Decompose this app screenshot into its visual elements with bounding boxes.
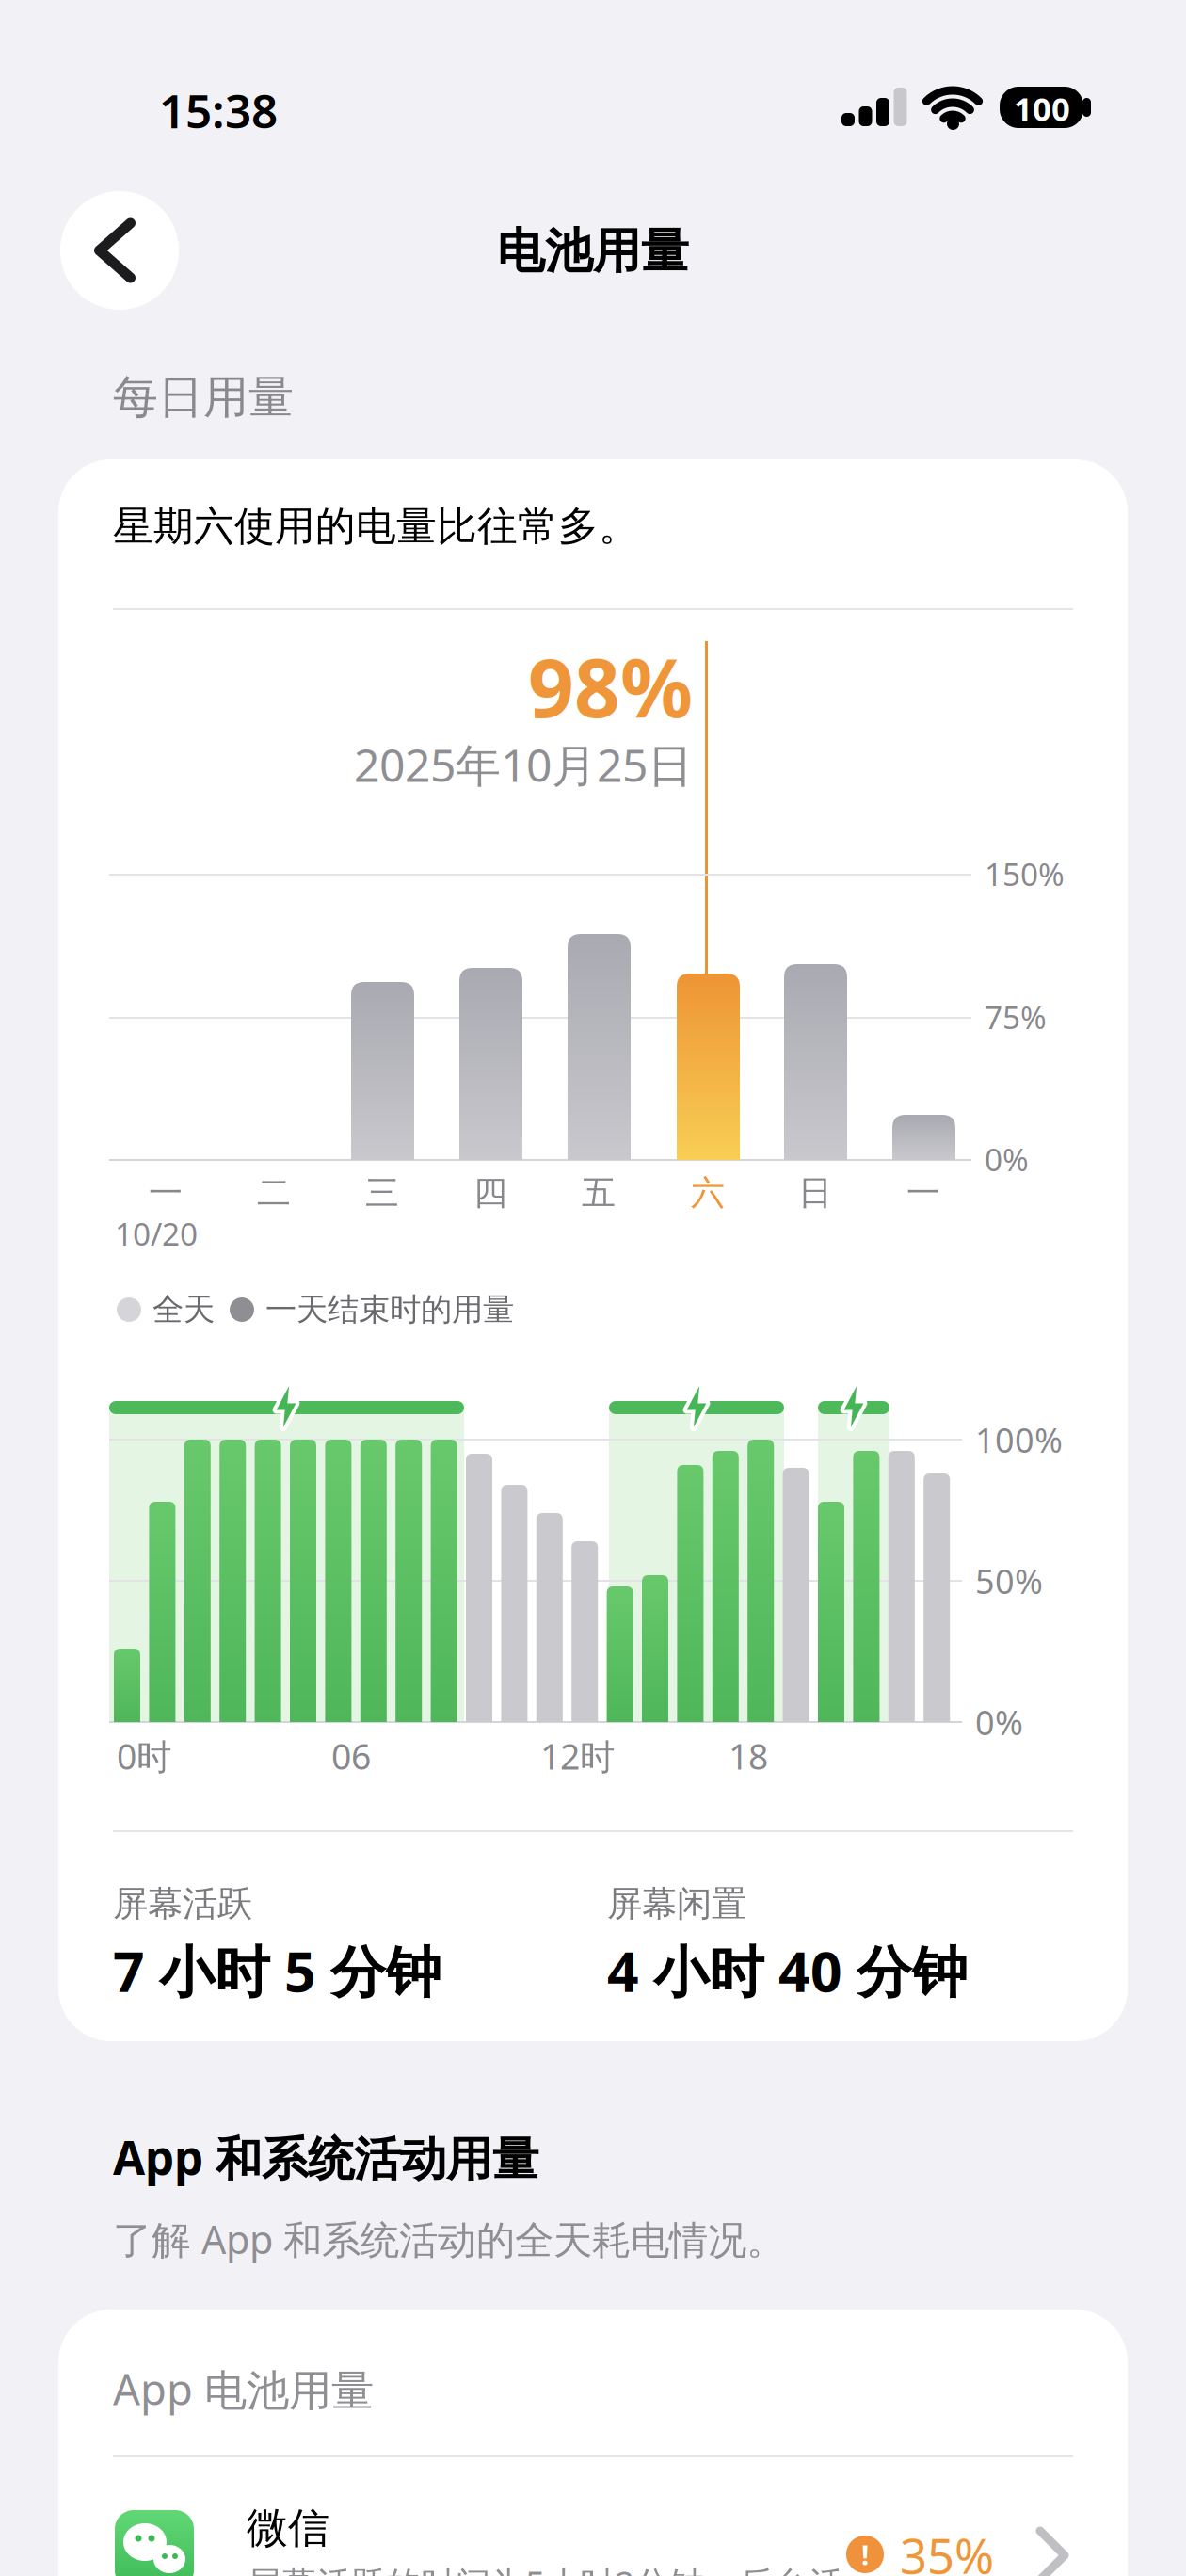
staticText: 35% bbox=[900, 2524, 994, 2576]
staticText: 屏幕活跃 bbox=[113, 1882, 252, 1925]
staticText: 六 bbox=[691, 1172, 725, 1214]
staticText: 屏幕活跃的时间为5小时2分钟，后台活 bbox=[247, 2560, 843, 2576]
staticText: 7 小时 5 分钟 bbox=[113, 1934, 441, 2007]
staticText: App 和系统活动用量 bbox=[113, 2126, 538, 2188]
staticText: 150% bbox=[985, 853, 1065, 895]
staticText: 一天结束时的用量 bbox=[265, 1290, 514, 1329]
staticText: 100 bbox=[1014, 87, 1070, 130]
staticText: App 电池用量 bbox=[113, 2360, 374, 2417]
staticText: 电池用量 bbox=[497, 222, 689, 281]
staticText: 一 bbox=[906, 1172, 940, 1214]
staticText: 4 小时 40 分钟 bbox=[607, 1934, 968, 2007]
button[interactable] bbox=[60, 191, 179, 310]
staticText: 0% bbox=[975, 1700, 1023, 1745]
staticText: 三 bbox=[365, 1172, 399, 1214]
staticText: 100% bbox=[975, 1417, 1063, 1462]
staticText: 0% bbox=[985, 1138, 1029, 1180]
staticText: 98% bbox=[528, 633, 693, 740]
staticText: 了解 App 和系统活动的全天耗电情况。 bbox=[113, 2213, 785, 2265]
staticText: 二 bbox=[257, 1172, 291, 1214]
staticText: 12时 bbox=[540, 1733, 615, 1779]
staticText: 75% bbox=[985, 996, 1047, 1038]
button[interactable]: 微信 bbox=[58, 2310, 1128, 2576]
staticText: 0时 bbox=[117, 1733, 171, 1779]
staticText: 10/20 bbox=[115, 1213, 198, 1254]
staticText: 四 bbox=[473, 1172, 507, 1214]
staticText: 五 bbox=[582, 1172, 616, 1214]
staticText: ! bbox=[861, 2536, 869, 2573]
staticText: 15:38 bbox=[159, 79, 278, 141]
staticText: 一 bbox=[149, 1172, 183, 1214]
staticText: 18 bbox=[729, 1733, 768, 1779]
staticText: 星期六使用的电量比往常多。 bbox=[113, 502, 639, 551]
staticText: 屏幕闲置 bbox=[607, 1882, 746, 1925]
staticText: 50% bbox=[975, 1558, 1043, 1603]
staticText: 微信 bbox=[247, 2503, 329, 2553]
staticText: 06 bbox=[331, 1733, 371, 1779]
staticText: 每日用量 bbox=[113, 370, 294, 425]
staticText: 全天 bbox=[152, 1290, 215, 1329]
staticText: 日 bbox=[798, 1172, 832, 1214]
staticText: 2025年10月25日 bbox=[354, 734, 693, 794]
